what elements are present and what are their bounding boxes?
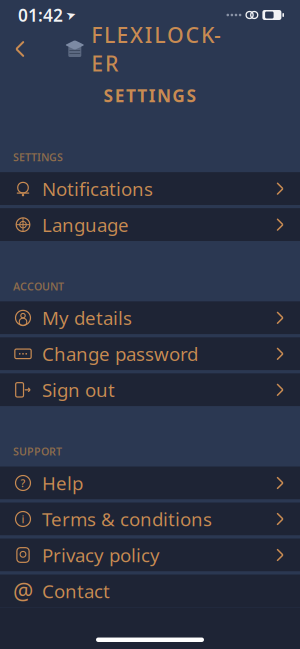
button[interactable]: Change password bbox=[0, 337, 300, 370]
staticText: ACCOUNT bbox=[13, 279, 64, 293]
staticText: Contact bbox=[42, 579, 110, 603]
button[interactable]: i bbox=[0, 502, 300, 535]
button[interactable]: Sign out bbox=[0, 373, 300, 406]
button[interactable]: Back bbox=[0, 31, 40, 67]
staticText: Notifications bbox=[42, 176, 153, 201]
staticText: 01:42 bbox=[18, 3, 63, 26]
button[interactable]: Privacy policy bbox=[0, 538, 300, 571]
staticText: SUPPORT bbox=[13, 444, 62, 458]
staticText: My details bbox=[42, 305, 132, 330]
staticText: Terms & conditions bbox=[42, 507, 212, 531]
staticText: ➤ bbox=[66, 8, 76, 22]
staticText: Privacy policy bbox=[42, 543, 160, 567]
staticText: ? bbox=[20, 476, 25, 490]
staticText: Sign out bbox=[42, 377, 115, 402]
staticText: FLEXILOCKER bbox=[91, 21, 221, 77]
staticText: SETTINGS bbox=[103, 84, 197, 107]
staticText: i bbox=[21, 512, 24, 526]
button[interactable]: Notifications bbox=[0, 172, 300, 205]
staticText: Help bbox=[42, 471, 83, 495]
button[interactable]: ? bbox=[0, 466, 300, 499]
button[interactable]: @ bbox=[0, 574, 300, 607]
staticText: Language bbox=[42, 212, 129, 237]
button[interactable]: My details bbox=[0, 301, 300, 334]
button[interactable]: Language bbox=[0, 208, 300, 241]
staticText: Change password bbox=[42, 341, 198, 366]
staticText: @ bbox=[13, 576, 33, 606]
staticText: SETTINGS bbox=[13, 150, 63, 164]
